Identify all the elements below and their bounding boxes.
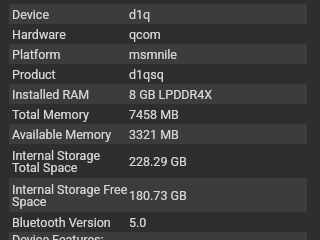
staticText: qcom [129,27,161,42]
staticText: d1qsq [129,67,164,82]
button[interactable]: Platform [9,44,307,64]
staticText: 180.73 GB [129,188,187,203]
staticText: Installed RAM [12,87,129,102]
staticText: Bluetooth Version [12,215,129,230]
button[interactable]: Available Memory [9,124,307,144]
staticText: Available Memory [12,127,129,142]
button[interactable]: Hardware [9,24,307,44]
button[interactable]: Internal Storage Free Space [9,178,307,212]
button[interactable]: Device [9,4,307,24]
staticText: 5.0 [129,215,147,230]
staticText: Total Memory [12,107,129,122]
button[interactable]: Bluetooth Version [9,212,307,232]
staticText: 7458 MB [129,107,179,122]
button[interactable]: Installed RAM [9,84,307,104]
staticText: Platform [12,47,129,62]
staticText: 228.29 GB [129,154,187,169]
staticText: Device [12,7,129,22]
staticText: 8 GB LPDDR4X [129,87,213,102]
staticText: Hardware [12,27,129,42]
staticText: Internal Storage Total Space [12,148,129,175]
button[interactable]: Product [9,64,307,84]
staticText: d1q [129,7,151,22]
staticText: Device Features: [12,232,129,240]
staticText: msmnile [129,47,177,62]
staticText: Product [12,67,129,82]
button[interactable]: Device Features: [9,232,307,240]
staticText: Internal Storage Free Space [12,182,129,209]
staticText: 3321 MB [129,127,179,142]
button[interactable]: Total Memory [9,104,307,124]
button[interactable]: Internal Storage Total Space [9,144,307,178]
